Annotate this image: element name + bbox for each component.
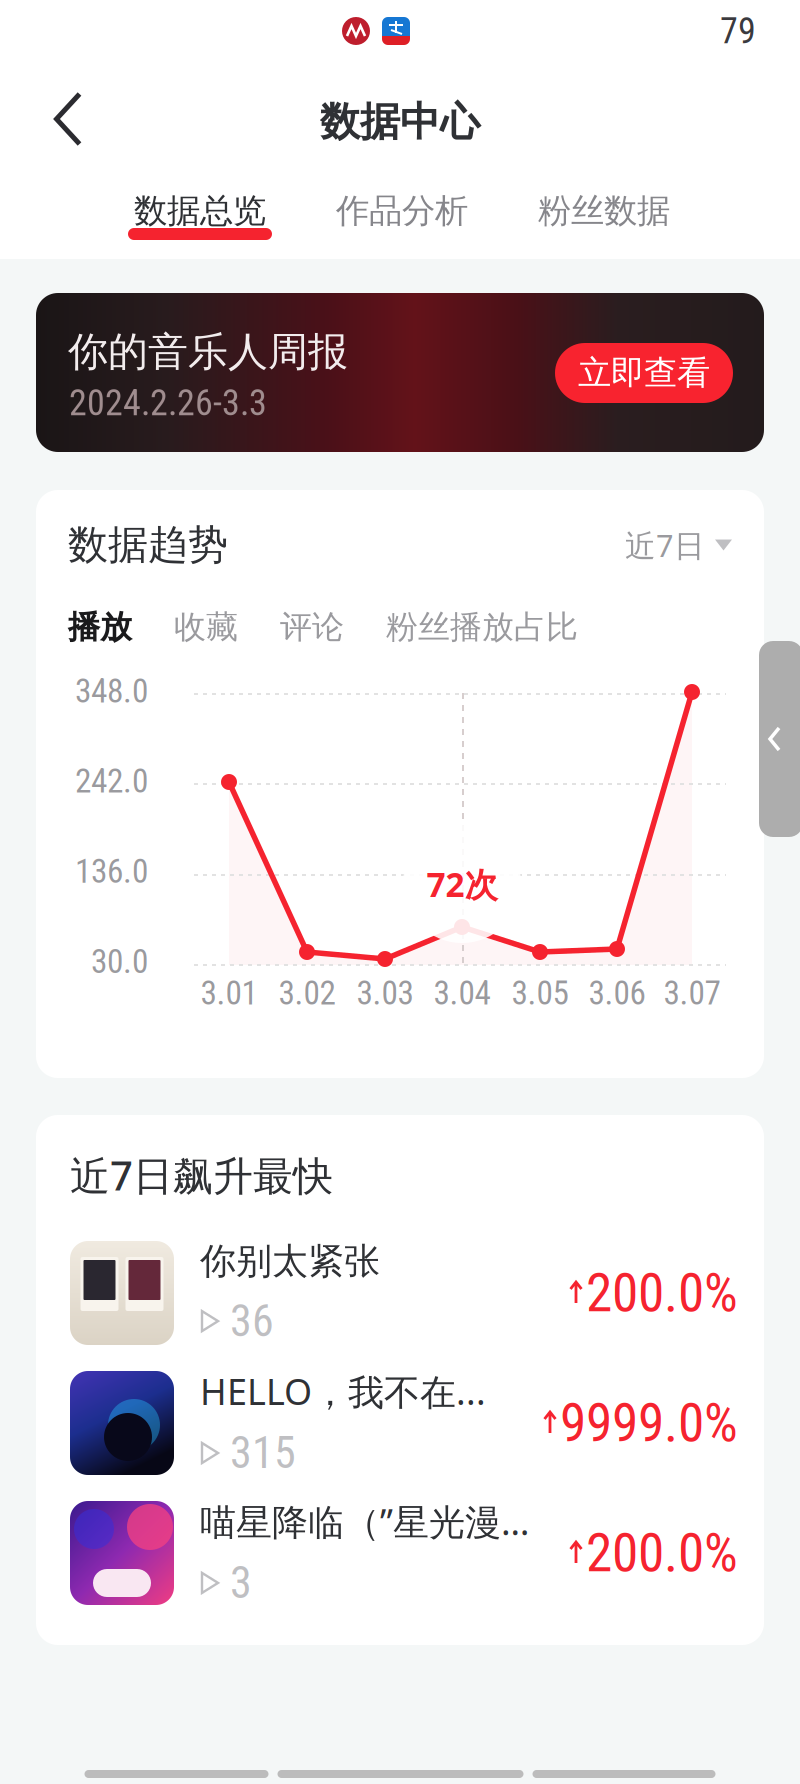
staticText: 3.02 [278,973,335,1013]
button[interactable]: 数据总览 [99,159,301,259]
staticText: 播放 [68,607,132,647]
staticText: 收藏 [174,607,238,647]
staticText: 数据总览 [134,190,266,231]
staticText: 近7日飙升最快 [70,1148,333,1201]
staticText: 3 [230,1557,252,1609]
staticText: 3.07 [663,973,720,1013]
staticText: 粉丝播放占比 [386,607,578,647]
staticText: 242.0 [75,762,148,801]
button[interactable]: 喵星降临（”星光漫… [36,1488,764,1618]
button[interactable]: 粉丝播放占比 [386,607,578,647]
staticText: 粉丝数据 [538,190,670,231]
staticText: HELLO，我不在... [200,1367,486,1415]
staticText: 200.0% [586,1262,738,1324]
staticText: 作品分析 [336,190,468,231]
button[interactable]: 粉丝数据 [503,159,705,259]
staticText: 3.06 [588,973,645,1013]
staticText: 评论 [280,607,344,647]
staticText: 9999.0% [560,1392,738,1454]
staticText: 立即查看 [578,352,710,393]
staticText: 315 [230,1427,296,1479]
staticText: 近7日 [625,525,705,565]
button[interactable]: HELLO，我不在... [36,1358,764,1488]
staticText: 200.0% [586,1522,738,1584]
button[interactable]: 收藏 [174,607,238,647]
button[interactable]: Back [26,79,110,159]
staticText: 36 [230,1295,274,1347]
staticText: 喵星降临（”星光漫… [200,1497,529,1545]
staticText: 72次 [426,862,497,906]
staticText: 数据中心 [320,97,480,146]
staticText: 你的音乐人周报 [68,327,348,376]
staticText: 79 [720,10,756,52]
button[interactable]: Open panel [759,641,800,837]
staticText: 30.0 [91,942,148,981]
staticText: 348.0 [75,671,148,711]
staticText: 你别太紧张 [200,1239,380,1283]
button[interactable]: 立即查看 [555,343,733,403]
staticText: 136.0 [75,852,148,891]
button[interactable]: 评论 [280,607,344,647]
button[interactable]: 你别太紧张 [36,1228,764,1358]
staticText: 3.03 [356,973,413,1013]
staticText: 数据趋势 [68,520,228,569]
button[interactable]: 作品分析 [301,159,503,259]
button[interactable]: 近7日 [625,525,732,565]
staticText: 3.04 [433,973,490,1013]
staticText: 3.01 [200,973,257,1013]
button[interactable]: 播放 [68,607,132,647]
staticText: 2024.2.26-3.3 [69,382,267,424]
staticText: 3.05 [511,973,568,1013]
